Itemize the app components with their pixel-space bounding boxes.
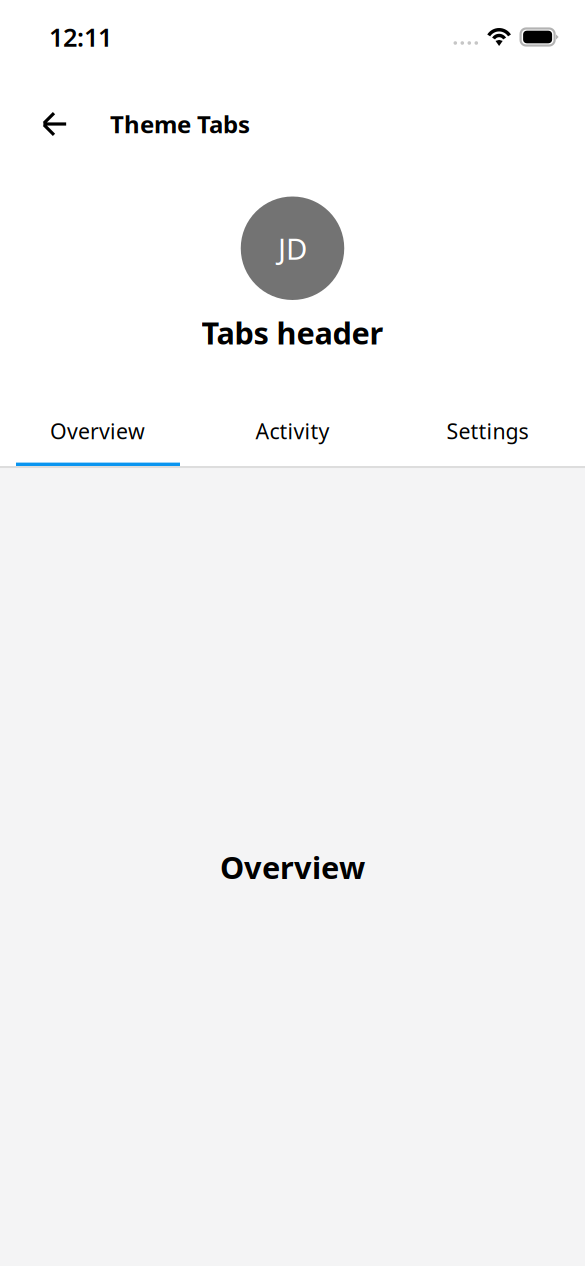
button[interactable]: Overview <box>0 404 195 466</box>
staticText: Settings <box>446 417 528 445</box>
staticText: JD <box>278 229 307 268</box>
staticText: Overview <box>50 417 145 445</box>
staticText: Activity <box>255 417 329 445</box>
button[interactable]: Settings <box>390 404 585 466</box>
button[interactable]: Back <box>30 100 78 148</box>
staticText: Theme Tabs <box>110 108 250 140</box>
staticText: Overview <box>220 847 365 887</box>
staticText: Tabs header <box>201 312 383 353</box>
staticText: 12:11 <box>49 20 112 54</box>
button[interactable]: Activity <box>195 404 390 466</box>
